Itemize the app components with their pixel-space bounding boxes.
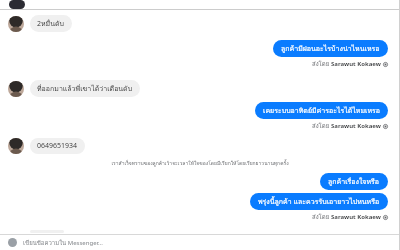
staticText: 0649651934 <box>37 141 78 151</box>
staticText: ส่งโดย <box>312 121 331 131</box>
staticText: เคยระบบอาทิตย์มีค่ารอะไรได้ไหมเหรอ <box>263 105 380 116</box>
button[interactable]: 0649651934 <box>30 138 85 154</box>
staticText: ลูกค้าเรื่องใจหรือ <box>328 176 380 187</box>
button[interactable]: ที่ออกมาแล้วพี่เขาได้ว่าเดือนดับ <box>30 80 140 97</box>
staticText: ส่งโดย <box>312 212 331 222</box>
staticText: พรุ่งนี้ลูกค้า และควรรับเอายาวไปหนหรือ <box>258 196 380 207</box>
button[interactable]: 2หมื่นดับ <box>30 15 72 32</box>
button[interactable]: พรุ่งนี้ลูกค้า และควรรับเอายาวไปหนหรือ <box>250 193 388 210</box>
button[interactable]: ลูกค้าเรื่องใจหรือ <box>320 173 388 190</box>
staticText: เราสำเร็จทราบของลูกค้าเว้าจะเวลาให้ใจของ… <box>111 159 289 167</box>
button[interactable]: ลูกค้ามีผ่อนอะไรบ้างน่าไหนเหรอ <box>273 40 388 57</box>
staticText: 2หมื่นดับ <box>37 18 65 29</box>
button[interactable]: เคยระบบอาทิตย์มีค่ารอะไรได้ไหมเหรอ <box>255 102 388 119</box>
staticText: ที่ออกมาแล้วพี่เขาได้ว่าเดือนดับ <box>37 83 133 94</box>
staticText: Sarawut Kokaew <box>331 213 381 221</box>
staticText: เขียนข้อความใน Messenger... <box>23 238 103 248</box>
staticText: ส่งโดย <box>312 59 331 69</box>
staticText: Sarawut Kokaew <box>331 122 381 130</box>
staticText: ลูกค้ามีผ่อนอะไรบ้างน่าไหนเหรอ <box>281 43 380 54</box>
staticText: Sarawut Kokaew <box>331 60 381 68</box>
